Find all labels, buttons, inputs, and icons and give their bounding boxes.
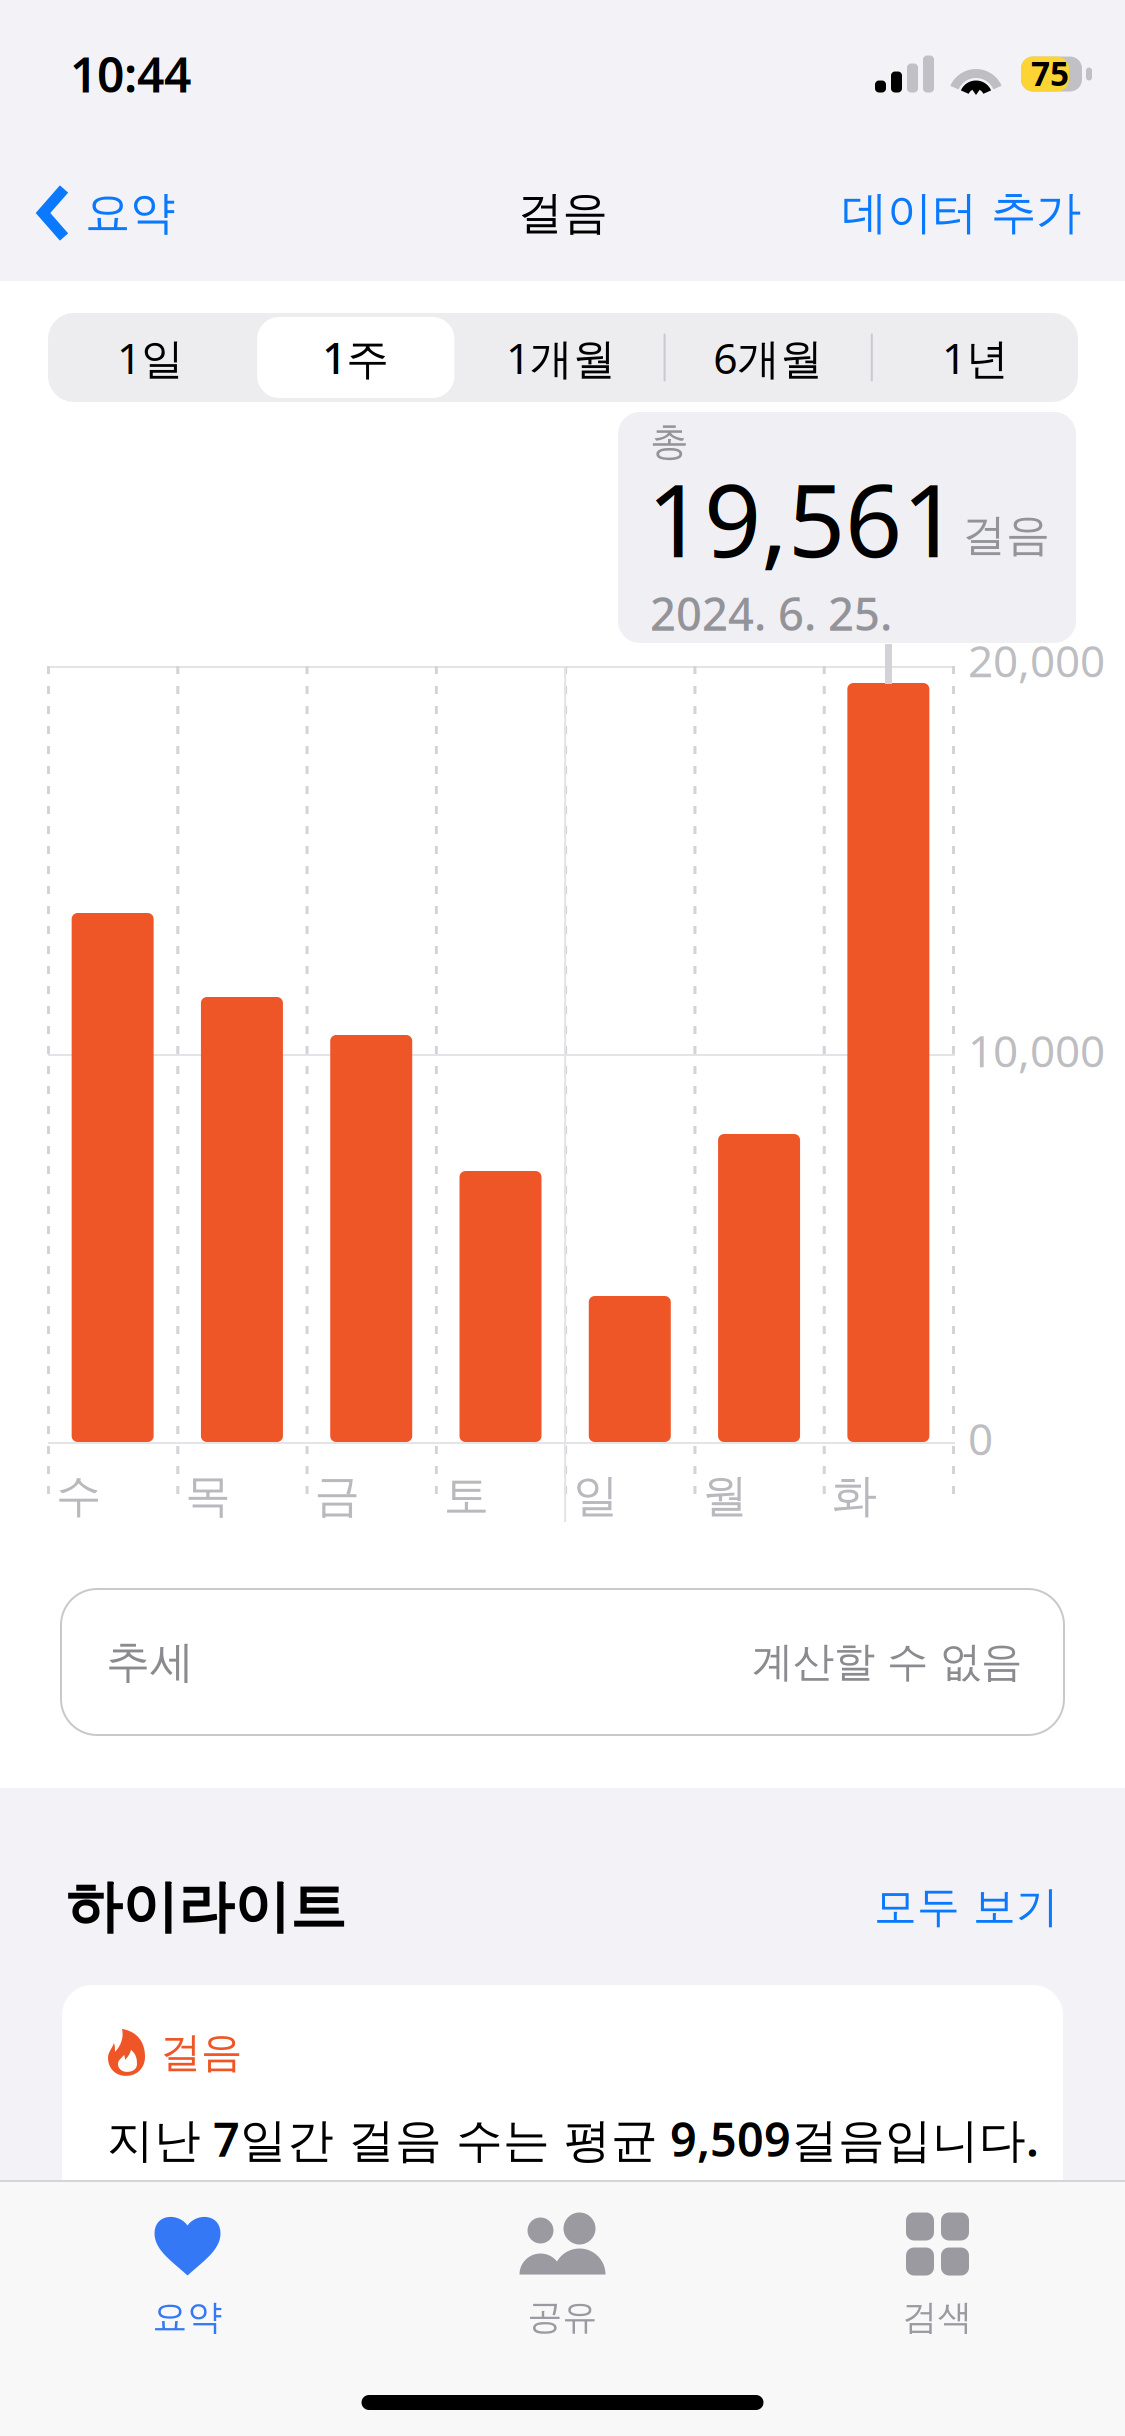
staticText: 일 [573,1468,618,1524]
button[interactable]: 걸음 [62,1985,1063,2305]
staticText: 월 [702,1468,747,1524]
staticText: 하이라이트 [66,1873,346,1941]
button[interactable]: 요약 [0,2212,375,2357]
button[interactable]: 모두 보기 [874,1881,1059,1933]
staticText: 추세 [106,1635,194,1689]
button[interactable]: 검색 [750,2212,1125,2357]
staticText: 20,000 [968,631,1105,689]
staticText: 1일 [117,329,184,386]
staticText: 검색 [902,2296,972,2339]
staticText: 1년 [942,329,1009,386]
staticText: 걸음 [160,2027,242,2078]
staticText: 요약 [152,2296,222,2339]
staticText: 10:44 [70,42,191,106]
staticText: 지난 7일간 걸음 수는 평균 9,509걸음입니다. [107,2108,1039,2170]
staticText: 1주 [322,329,389,386]
staticText: 75 [1031,51,1069,95]
staticText: 데이터 추가 [842,185,1081,241]
button[interactable]: 공유 [375,2212,750,2357]
staticText: 2024. 6. 25. [650,583,892,643]
staticText: 6개월 [713,329,823,386]
staticText: 걸음 [517,185,607,241]
button[interactable]: 데이터 추가 [822,158,1125,268]
staticText: 수 [56,1468,101,1524]
staticText: 공유 [527,2296,597,2339]
staticText: 요약 [85,185,175,241]
staticText: 목 [185,1468,230,1524]
staticText: 계산할 수 없음 [752,1637,1022,1687]
staticText: 총 [650,418,689,465]
button[interactable]: 1주 [253,313,458,402]
staticText: 토 [444,1468,489,1524]
staticText: 10,000 [968,1021,1105,1079]
staticText: 19,561 [647,452,959,585]
staticText: 화 [832,1468,877,1524]
button[interactable]: 1일 [48,313,253,402]
staticText: 0 [968,1409,993,1467]
button[interactable]: 요약 [0,158,195,268]
button[interactable]: 1개월 [458,313,664,402]
button[interactable]: 1년 [873,313,1078,402]
staticText: 1개월 [506,329,616,386]
staticText: 금 [315,1468,360,1524]
staticText: 걸음 [962,508,1050,562]
staticText: 모두 보기 [874,1881,1059,1933]
button[interactable]: 6개월 [666,313,871,402]
button[interactable]: 추세 [61,1589,1064,1735]
